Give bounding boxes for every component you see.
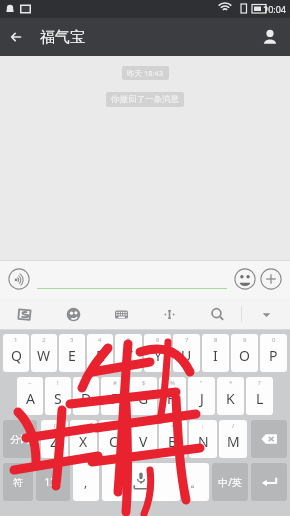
button[interactable]: ; bbox=[189, 420, 217, 458]
button[interactable]: 9 bbox=[231, 334, 258, 372]
staticText: 。 bbox=[190, 475, 202, 490]
button[interactable]: ) bbox=[70, 420, 97, 458]
staticText: 8 bbox=[214, 336, 218, 344]
staticText: T bbox=[125, 346, 133, 365]
button[interactable]: $ bbox=[130, 377, 157, 415]
staticText: J bbox=[200, 389, 204, 408]
button[interactable]: = bbox=[159, 420, 187, 458]
button[interactable]: 符 bbox=[3, 463, 33, 501]
button[interactable]: 4 bbox=[87, 334, 113, 372]
button[interactable]: Backspace bbox=[251, 420, 287, 458]
button[interactable]: % bbox=[159, 377, 186, 415]
staticText: @ bbox=[83, 379, 89, 387]
button[interactable]: @ bbox=[73, 377, 99, 415]
button[interactable]: ! bbox=[45, 377, 71, 415]
staticText: ) bbox=[83, 422, 85, 430]
staticText: 0 bbox=[272, 336, 276, 344]
button[interactable]: Enter bbox=[251, 463, 287, 501]
staticText: X bbox=[79, 432, 88, 451]
button[interactable]: 6 bbox=[144, 334, 171, 372]
button[interactable]: , bbox=[73, 463, 99, 501]
staticText: , bbox=[84, 474, 88, 490]
button[interactable]: Emoji bbox=[232, 266, 258, 292]
button[interactable]: 123 bbox=[36, 463, 70, 501]
button[interactable]: " bbox=[188, 377, 215, 415]
staticText: = bbox=[171, 422, 175, 430]
staticText: A bbox=[26, 389, 35, 408]
staticText: N bbox=[198, 432, 209, 451]
button[interactable]: 3 bbox=[59, 334, 85, 372]
staticText: U bbox=[181, 346, 192, 365]
staticText: V bbox=[139, 432, 148, 451]
staticText: 你撤回了一条消息 bbox=[111, 94, 179, 105]
button[interactable]: ? bbox=[246, 377, 273, 415]
staticText: C bbox=[109, 432, 118, 451]
button[interactable]: / bbox=[219, 420, 247, 458]
button[interactable]: # bbox=[101, 377, 128, 415]
button[interactable]: ( bbox=[41, 420, 68, 458]
button[interactable]: 0 bbox=[260, 334, 287, 372]
button[interactable]: 8 bbox=[202, 334, 229, 372]
staticText: I bbox=[213, 346, 218, 365]
staticText: W bbox=[37, 346, 51, 365]
staticText: D bbox=[81, 389, 92, 408]
staticText: ~ bbox=[28, 379, 32, 387]
staticText: 1 bbox=[14, 336, 18, 344]
staticText: G bbox=[138, 389, 149, 408]
staticText: 分词 bbox=[10, 433, 30, 446]
staticText: Q bbox=[11, 346, 22, 365]
button[interactable]: Space bbox=[102, 463, 180, 501]
staticText: L bbox=[256, 389, 264, 408]
button[interactable]: 5 bbox=[115, 334, 142, 372]
staticText: O bbox=[239, 346, 250, 365]
staticText: 4 bbox=[98, 336, 102, 344]
staticText: Y bbox=[154, 346, 162, 365]
staticText: 6 bbox=[156, 336, 160, 344]
button[interactable]: Sogou input bbox=[0, 298, 49, 330]
button[interactable] bbox=[37, 260, 227, 298]
staticText: 5 bbox=[127, 336, 131, 344]
staticText: K bbox=[226, 389, 235, 408]
button[interactable]: 。 bbox=[183, 463, 209, 501]
staticText: $ bbox=[142, 379, 146, 387]
button[interactable]: 分词 bbox=[3, 420, 37, 458]
staticText: Z bbox=[50, 432, 59, 451]
staticText: + bbox=[141, 422, 145, 430]
button[interactable]: Search bbox=[193, 298, 241, 330]
button[interactable]: - bbox=[99, 420, 127, 458]
staticText: F bbox=[111, 389, 119, 408]
staticText: 符 bbox=[13, 476, 23, 489]
button[interactable]: Move cursor bbox=[145, 298, 193, 330]
button[interactable]: ~ bbox=[17, 377, 43, 415]
button[interactable]: Collapse keyboard bbox=[242, 298, 290, 330]
staticText: H bbox=[167, 389, 178, 408]
staticText: 中/英 bbox=[218, 475, 242, 489]
button[interactable]: Contact info bbox=[250, 18, 290, 56]
staticText: ! bbox=[57, 379, 59, 387]
button[interactable]: * bbox=[217, 377, 244, 415]
staticText: / bbox=[232, 422, 235, 430]
staticText: # bbox=[113, 379, 117, 387]
button[interactable]: 2 bbox=[31, 334, 57, 372]
button[interactable]: Keyboard layout bbox=[97, 298, 145, 330]
button[interactable]: 中/英 bbox=[212, 463, 248, 501]
button[interactable]: Back bbox=[0, 18, 34, 56]
staticText: ? bbox=[258, 379, 261, 387]
staticText: B bbox=[168, 432, 178, 451]
button[interactable]: Voice input bbox=[6, 266, 32, 292]
staticText: S bbox=[54, 389, 62, 408]
button[interactable]: 1 bbox=[3, 334, 29, 372]
staticText: ( bbox=[54, 422, 56, 430]
button[interactable]: + bbox=[129, 420, 157, 458]
staticText: 3 bbox=[70, 336, 74, 344]
staticText: E bbox=[68, 346, 76, 365]
button[interactable]: More bbox=[258, 266, 284, 292]
staticText: 123 bbox=[44, 475, 62, 489]
button[interactable]: Emoticons bbox=[49, 298, 97, 330]
staticText: 9 bbox=[243, 336, 247, 344]
staticText: R bbox=[96, 346, 105, 365]
staticText: 福气宝 bbox=[40, 28, 85, 47]
button[interactable]: 7 bbox=[173, 334, 200, 372]
staticText: 10:04 bbox=[263, 3, 287, 15]
